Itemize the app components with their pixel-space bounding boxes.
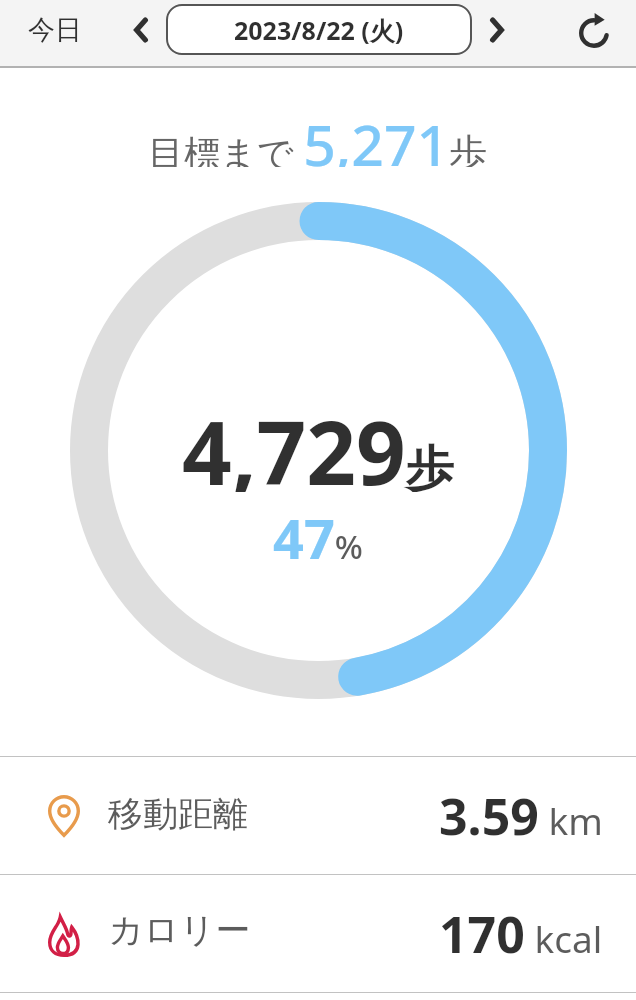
button[interactable]: 2023/8/22 (火) xyxy=(166,4,472,55)
button[interactable]: カロリー xyxy=(0,875,636,992)
button[interactable]: Next day xyxy=(472,0,522,59)
button[interactable]: 今日 xyxy=(14,0,96,59)
button[interactable]: Refresh xyxy=(564,0,624,61)
staticText: 3.59 km xyxy=(439,782,603,850)
button[interactable]: Previous day xyxy=(116,0,166,59)
staticText: カロリー xyxy=(108,908,251,952)
staticText: 47% xyxy=(273,501,363,563)
staticText: 移動距離 xyxy=(108,792,248,836)
button[interactable]: 移動距離 xyxy=(0,757,636,874)
staticText: 目標まで 5,271歩 xyxy=(148,105,488,167)
staticText: 今日 xyxy=(28,13,82,47)
staticText: 2023/8/22 (火) xyxy=(234,13,404,47)
staticText: 4,729歩 xyxy=(182,392,454,492)
staticText: 170 kcal xyxy=(439,900,603,968)
